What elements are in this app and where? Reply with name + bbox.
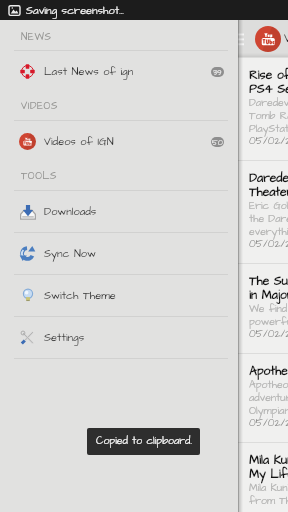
button[interactable]: Apotheon Arena Review xyxy=(238,353,288,442)
staticText: Daredevil Season 2 is a Tomb Raider excl… xyxy=(249,96,288,136)
staticText: Switch Theme xyxy=(44,288,116,303)
staticText: Copied to clipboard. xyxy=(96,434,192,449)
button[interactable]: Mila Kunis on the Story of My Life Full … xyxy=(238,442,288,512)
staticText: 05/02/2016 xyxy=(249,134,288,149)
staticText: NEWS xyxy=(21,30,52,44)
staticText: Saving screenshot... xyxy=(26,3,124,18)
staticText: The Surprising Twists in Major Movies xyxy=(249,273,288,304)
staticText: 05/02/2016 xyxy=(249,327,288,342)
staticText: Apotheon is an action adventure game set… xyxy=(249,378,288,418)
staticText: TOOLS xyxy=(21,169,57,183)
staticText: We find the most powerful moments here. xyxy=(249,302,288,329)
staticText: 05/02/2016 xyxy=(249,237,288,252)
button[interactable]: Downloads xyxy=(0,191,238,232)
staticText: Sync Now xyxy=(44,246,96,261)
button[interactable]: Last News of ign xyxy=(0,51,238,92)
button[interactable]: Settings xyxy=(0,317,238,358)
staticText: Rise of the Tomb Raider PS4 Set For Octo… xyxy=(249,67,288,98)
button[interactable]: Rise of the Tomb Raider PS4 Set For Octo… xyxy=(238,57,288,160)
button[interactable]: Sync Now xyxy=(0,233,238,274)
staticText: Last News of ign xyxy=(44,64,134,79)
staticText: Apotheon Arena Review xyxy=(249,363,288,380)
button[interactable]: Daredevil Season 2 Review: Theater of Pa… xyxy=(238,160,288,263)
staticText: Downloads xyxy=(44,204,97,219)
button[interactable]: Switch Theme xyxy=(0,275,238,316)
button[interactable]: The Surprising Twists in Major Movies xyxy=(238,263,288,353)
staticText: Videos of IGN xyxy=(44,134,114,149)
staticText: Eric Goldman reviews the Daredevil seaso… xyxy=(249,199,288,239)
staticText: Videos of IGN xyxy=(284,30,288,47)
staticText: Mila Kunis on the Story of My Life Full … xyxy=(249,452,288,483)
staticText: Mila Kunis tells a story from The Tonigh… xyxy=(249,481,288,504)
staticText: 05/02/2016 xyxy=(249,416,288,431)
staticText: Daredevil Season 2 Review: Theater of Pa… xyxy=(249,170,288,201)
staticText: VIDEOS xyxy=(21,99,58,113)
staticText: 50 xyxy=(212,137,223,147)
button[interactable]: Videos of IGN xyxy=(0,121,238,162)
button[interactable]: Open navigation drawer xyxy=(221,20,251,57)
staticText: 39 xyxy=(213,67,222,77)
staticText: Settings xyxy=(44,330,85,345)
